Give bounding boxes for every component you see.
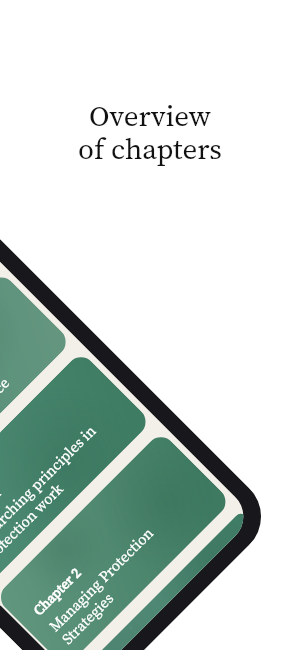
staticText: Protection at a glance <box>0 372 14 489</box>
staticText: Overview of chapters <box>78 96 222 169</box>
button[interactable]: Chapter 1 <box>0 351 152 588</box>
staticText: Overarching principles in protection wor… <box>0 420 113 569</box>
button[interactable]: Chapter 1 <box>0 271 72 508</box>
staticText: Chapter 2 <box>29 563 85 619</box>
staticText: Chapter 3 <box>87 622 133 650</box>
button[interactable]: Chapter 3 <box>75 511 251 650</box>
button[interactable]: Chapter 2 <box>0 431 232 650</box>
staticText: Managing Protection Strategies <box>44 522 171 649</box>
staticText: Chapter 1 <box>0 483 5 539</box>
